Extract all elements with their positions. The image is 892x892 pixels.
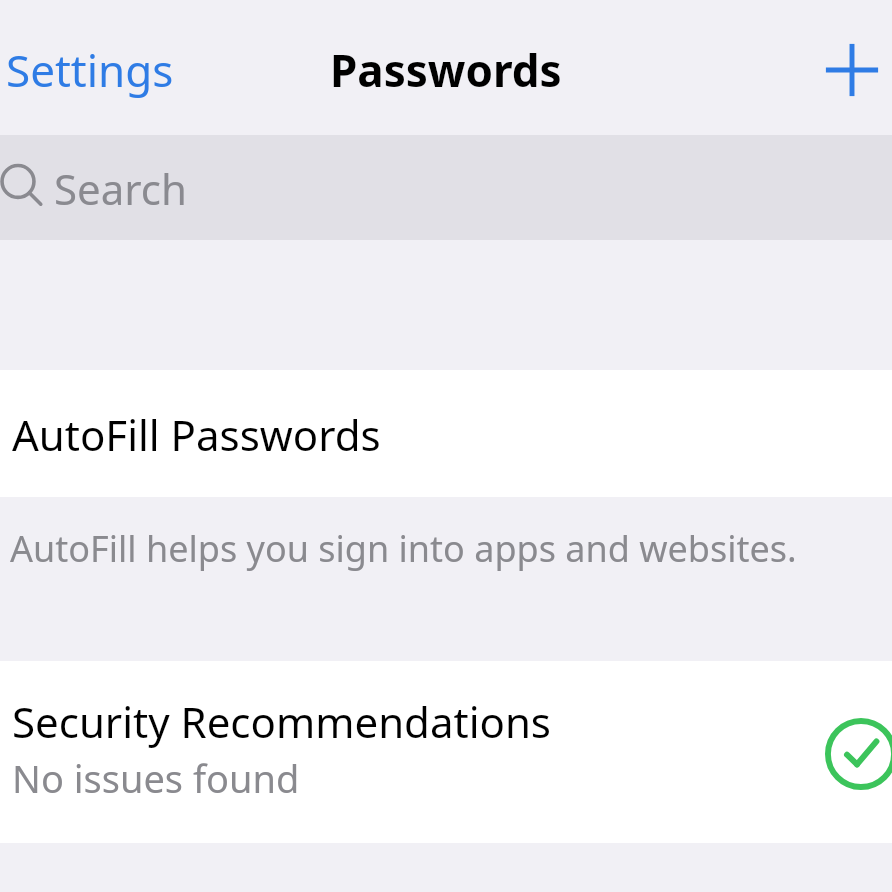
- button[interactable]: Security Recommendations: [0, 661, 892, 843]
- button[interactable]: Add password: [812, 30, 892, 110]
- staticText: AutoFill helps you sign into apps and we…: [10, 524, 797, 573]
- staticText: Passwords: [330, 40, 562, 100]
- staticText: Search: [54, 160, 187, 217]
- staticText: AutoFill Passwords: [12, 406, 381, 463]
- button[interactable]: Settings: [0, 34, 184, 106]
- staticText: Settings: [6, 40, 174, 100]
- button[interactable]: AutoFill Passwords: [0, 370, 892, 497]
- staticText: Security Recommendations: [12, 693, 551, 750]
- staticText: No issues found: [12, 752, 300, 804]
- other: No security issues: [825, 718, 892, 790]
- button[interactable]: Search: [0, 135, 892, 240]
